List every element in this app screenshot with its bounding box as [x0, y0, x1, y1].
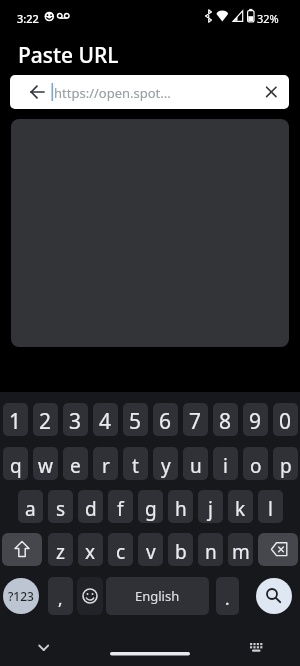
staticText: x [85, 539, 96, 565]
staticText: h [175, 496, 187, 522]
staticText: 9 [249, 407, 262, 436]
staticText: o [250, 453, 262, 479]
staticText: 5 [129, 407, 142, 436]
staticText: g [145, 496, 157, 522]
staticText: i [223, 453, 228, 479]
staticText: t [132, 453, 139, 479]
staticText: 2 [39, 407, 52, 436]
staticText: e [70, 453, 81, 479]
staticText: Paste URL [18, 41, 119, 70]
staticText: ?123 [8, 588, 34, 604]
staticText: 6 [159, 407, 172, 436]
staticText: l [268, 496, 273, 522]
staticText: 3 [69, 407, 82, 436]
staticText: , [58, 587, 63, 610]
staticText: f [117, 496, 124, 522]
staticText: u [190, 453, 202, 479]
staticText: w [38, 453, 53, 479]
staticText: 4 [99, 407, 112, 436]
staticText: b [175, 539, 187, 565]
staticText: q [10, 453, 22, 479]
staticText: https://open.spot... [54, 84, 171, 102]
staticText: c [116, 539, 126, 565]
staticText: English [135, 587, 180, 605]
staticText: z [56, 539, 65, 565]
staticText: 8 [219, 407, 232, 436]
staticText: v [146, 539, 156, 565]
staticText: j [208, 496, 213, 522]
staticText: r [102, 453, 110, 479]
staticText: p [280, 453, 292, 479]
staticText: n [205, 539, 217, 565]
staticText: d [85, 496, 97, 522]
staticText: 32% [257, 11, 279, 26]
staticText: m [232, 539, 250, 565]
staticText: 7 [189, 407, 202, 436]
staticText: 1 [9, 407, 22, 436]
staticText: a [25, 496, 36, 522]
staticText: y [161, 453, 171, 479]
staticText: s [56, 496, 66, 522]
staticText: k [235, 496, 246, 522]
staticText: 3:22 [17, 11, 39, 26]
staticText: . [225, 587, 230, 610]
staticText: 0 [279, 407, 292, 436]
